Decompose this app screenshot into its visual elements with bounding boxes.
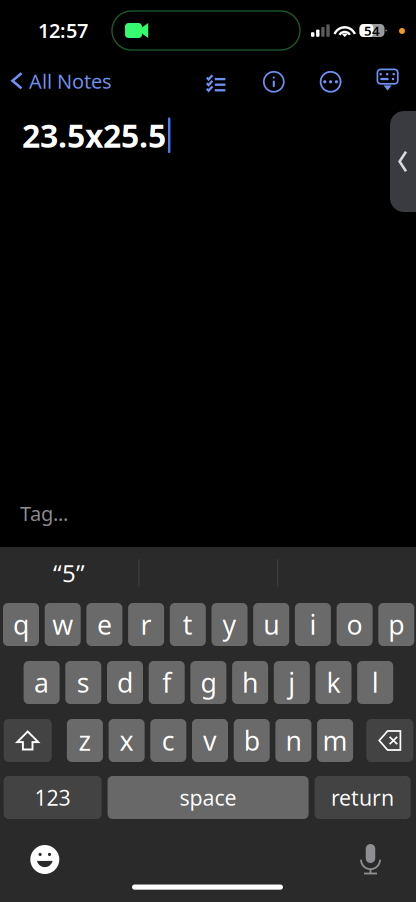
staticText: u [263,607,279,642]
staticText: w [52,607,73,642]
button[interactable]: h [232,661,268,704]
button[interactable]: Checklist [203,69,229,95]
staticText: i [309,607,316,642]
staticText: f [162,665,171,700]
staticText: 123 [35,783,71,812]
button[interactable]: Show note tools [390,111,416,212]
staticText: t [183,607,193,642]
staticText: j [288,665,295,700]
button[interactable]: l [357,661,393,704]
button[interactable]: u [253,603,289,646]
staticText: y [222,607,236,642]
button[interactable]: s [65,661,101,704]
staticText: a [34,665,49,700]
button[interactable]: j [274,661,310,704]
button[interactable]: Hide keyboard [376,68,400,92]
button[interactable]: w [45,603,81,646]
staticText: n [285,723,301,758]
button[interactable]: q [3,603,39,646]
staticText: c [162,723,175,758]
button[interactable]: y [211,603,247,646]
staticText: l [372,665,379,700]
button[interactable]: t [170,603,206,646]
button[interactable]: Note details [262,70,286,94]
staticText: h [242,665,258,700]
button[interactable]: More [319,70,343,94]
button[interactable]: a [24,661,60,704]
button[interactable]: Delete [366,719,413,762]
button[interactable]: i [295,603,331,646]
staticText: 54 [364,22,380,39]
button[interactable]: g [190,661,226,704]
button[interactable]: z [67,719,103,762]
button[interactable]: r [128,603,164,646]
button[interactable]: k [315,661,351,704]
button[interactable]: 123 [4,776,102,819]
staticText: Tag... [20,500,68,527]
staticText: q [13,607,29,642]
staticText: space [180,783,237,812]
button[interactable]: x [109,719,145,762]
staticText: All Notes [29,68,112,94]
button[interactable]: c [150,719,186,762]
staticText: m [323,723,348,758]
staticText: o [347,607,363,642]
staticText: b [244,723,260,758]
button[interactable]: b [234,719,270,762]
staticText: e [97,607,112,642]
staticText: z [78,723,91,758]
button[interactable]: v [192,719,228,762]
staticText: r [141,607,152,642]
staticText: v [203,723,217,758]
button[interactable]: Dictate [360,843,381,873]
button[interactable]: e [86,603,122,646]
staticText: k [326,665,340,700]
staticText: “5” [53,557,85,589]
staticText: s [77,665,90,700]
staticText: x [120,723,134,758]
staticText: g [200,665,216,700]
staticText: p [388,607,404,642]
button[interactable]: f [149,661,185,704]
button[interactable]: space [108,776,309,819]
staticText: d [117,665,133,700]
button[interactable]: d [107,661,143,704]
button[interactable]: o [337,603,373,646]
staticText: 12:57 [38,17,88,44]
button[interactable]: p [378,603,414,646]
button[interactable]: “5” [0,551,138,595]
button[interactable]: return [315,776,411,819]
button[interactable]: Emoji [30,845,59,874]
staticText: return [331,783,394,812]
button[interactable]: n [275,719,311,762]
button[interactable]: Shift [4,719,52,762]
staticText: 23.5x25.5 [22,114,166,156]
button[interactable]: All Notes [8,68,115,94]
button[interactable]: m [317,719,353,762]
